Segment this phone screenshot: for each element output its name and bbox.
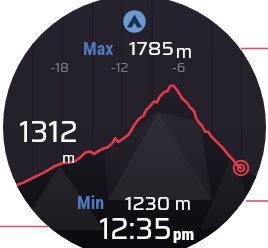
button[interactable]: Altimeter app [123,10,146,33]
button[interactable]: Altimeter app [0,0,268,248]
